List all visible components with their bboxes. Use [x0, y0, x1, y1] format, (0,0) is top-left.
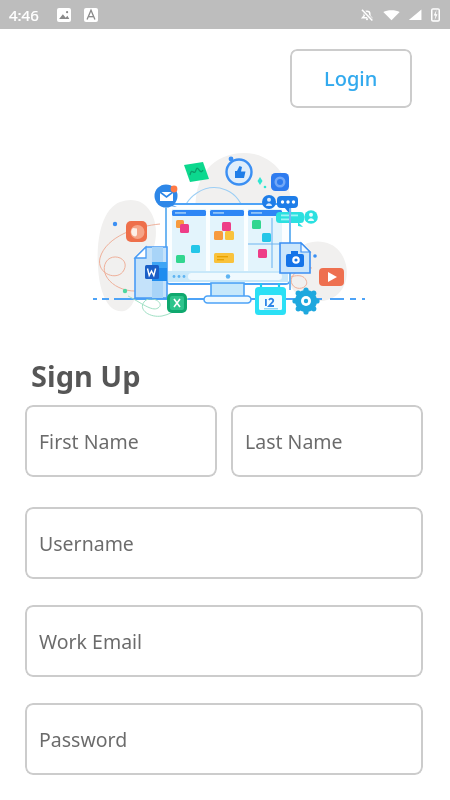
button[interactable]: Username [25, 507, 423, 579]
button[interactable]: Password [25, 703, 423, 775]
button[interactable]: Last Name [231, 405, 423, 477]
staticText: Sign Up [31, 356, 141, 395]
staticText: Login [324, 65, 378, 92]
button[interactable]: First Name [25, 405, 217, 477]
button[interactable]: Work Email [25, 605, 423, 677]
staticText: Last Name [245, 428, 343, 455]
staticText: Password [39, 726, 128, 753]
button[interactable]: Login [290, 49, 412, 108]
staticText: 4:46 [9, 5, 39, 25]
staticText: Work Email [39, 628, 143, 655]
staticText: First Name [39, 428, 139, 455]
staticText: Username [39, 530, 134, 557]
